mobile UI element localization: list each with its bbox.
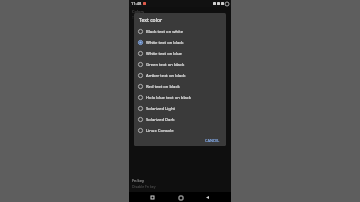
staticText: Red text on black (146, 84, 180, 90)
button[interactable]: Red text on black (134, 81, 226, 92)
button[interactable]: Linux Console (134, 125, 226, 136)
button[interactable]: Black text on white (134, 26, 226, 37)
staticText: Disable Fn key (132, 184, 156, 189)
button[interactable]: Recent apps (148, 193, 157, 202)
staticText: White text on black (146, 40, 184, 46)
button[interactable]: Amber text on black (134, 70, 226, 81)
staticText: Fn key (132, 178, 144, 183)
staticText: CANCEL (205, 138, 220, 143)
staticText: Text color (132, 15, 148, 20)
button[interactable]: Solarized Light (134, 103, 226, 114)
staticText: Black text on white (146, 29, 184, 35)
staticText: Holo blue text on black (146, 95, 192, 101)
button[interactable]: Home (176, 193, 185, 202)
staticText: White text on blue (146, 51, 182, 57)
button[interactable]: White text on blue (134, 48, 226, 59)
button[interactable]: White text on black (134, 37, 226, 48)
staticText: 11:48 (131, 1, 142, 6)
staticText: Green text on black (146, 62, 185, 68)
button[interactable]: Solarized Dark (134, 114, 226, 125)
button[interactable]: Green text on black (134, 59, 226, 70)
staticText: Solarized Dark (146, 117, 175, 123)
staticText: Amber text on black (146, 73, 186, 79)
button[interactable]: CANCEL (203, 137, 222, 144)
button[interactable]: Holo blue text on black (134, 92, 226, 103)
staticText: Text color (139, 17, 163, 24)
staticText: Linux Console (146, 128, 174, 134)
staticText: Colors (132, 9, 144, 14)
staticText: Solarized Light (146, 106, 176, 112)
button[interactable]: Back (203, 193, 212, 202)
